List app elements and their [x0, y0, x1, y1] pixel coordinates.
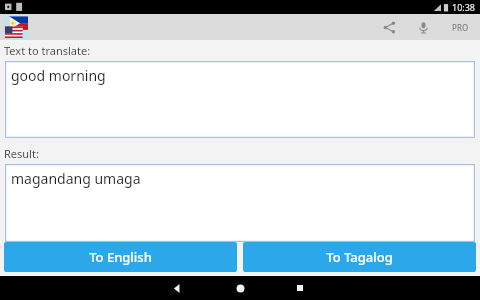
staticText: magandang umaga — [11, 169, 141, 188]
button[interactable]: To Tagalog — [243, 242, 476, 272]
staticText: Text to translate: — [4, 43, 91, 58]
button[interactable]: Share — [372, 14, 406, 40]
staticText: To English — [89, 248, 152, 266]
button[interactable]: Recent apps — [281, 276, 319, 300]
button[interactable]: Voice input — [406, 14, 440, 40]
button[interactable]: good morning — [5, 61, 475, 138]
button[interactable]: PRO — [440, 14, 480, 40]
staticText: good morning — [11, 66, 106, 85]
button[interactable]: Home — [221, 276, 259, 300]
staticText: Result: — [4, 146, 39, 161]
button[interactable]: magandang umaga — [5, 164, 475, 242]
staticText: 10:38 — [452, 1, 476, 13]
button[interactable]: App icon — [4, 15, 28, 39]
button[interactable]: To English — [4, 242, 237, 272]
button[interactable]: Back — [158, 276, 196, 300]
staticText: PRO — [452, 22, 469, 33]
staticText: To Tagalog — [326, 248, 393, 266]
